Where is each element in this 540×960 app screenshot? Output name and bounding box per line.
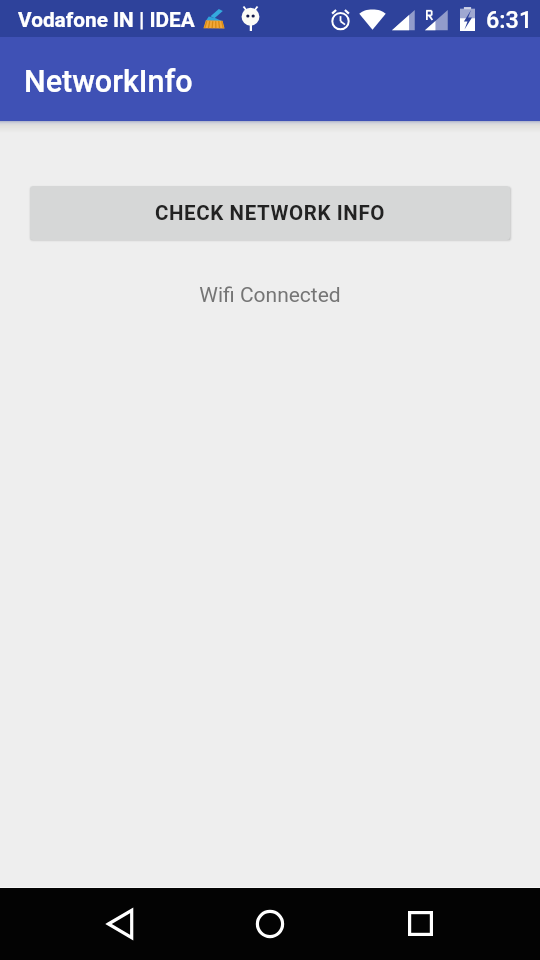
staticText: 6:31: [486, 6, 533, 34]
staticText: NetworkInfo: [24, 64, 193, 100]
staticText: CHECK NETWORK INFO: [155, 201, 386, 225]
button[interactable]: Home: [230, 887, 310, 960]
button[interactable]: Recent apps: [380, 887, 460, 960]
staticText: Wifi Connected: [0, 283, 540, 308]
button[interactable]: Back: [80, 887, 160, 960]
button[interactable]: CHECK NETWORK INFO: [30, 186, 510, 240]
staticText: Vodafone IN | IDEA: [18, 8, 195, 32]
